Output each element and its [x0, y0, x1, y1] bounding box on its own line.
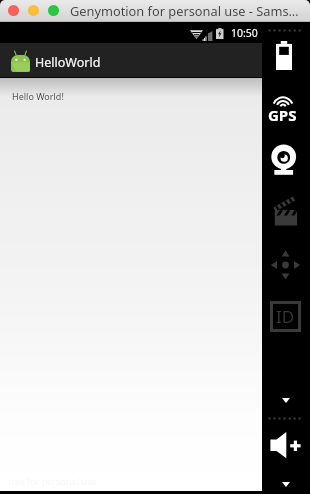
button[interactable]: Webcam — [268, 140, 304, 178]
staticText: HelloWorld — [35, 54, 101, 71]
button[interactable]: Volume down — [274, 476, 298, 492]
staticText: GPS — [268, 105, 297, 125]
button[interactable]: GPS — [267, 92, 305, 124]
button[interactable]: Show more — [274, 392, 298, 408]
button[interactable]: Volume up — [266, 428, 306, 462]
button[interactable]: Maximize window — [48, 5, 59, 16]
staticText: Hello World! — [12, 90, 64, 102]
staticText: 10:50 — [231, 26, 258, 40]
button[interactable]: Minimize window — [28, 5, 39, 16]
button[interactable]: Battery — [270, 37, 302, 73]
staticText: Genymotion for personal use - Sams… — [70, 2, 299, 19]
button[interactable]: Close window — [8, 5, 19, 16]
staticText: ID — [276, 305, 295, 328]
button[interactable]: Record screencast — [270, 193, 302, 229]
button[interactable]: Device identifiers — [268, 297, 306, 335]
button[interactable]: Navigation pad — [267, 247, 305, 283]
